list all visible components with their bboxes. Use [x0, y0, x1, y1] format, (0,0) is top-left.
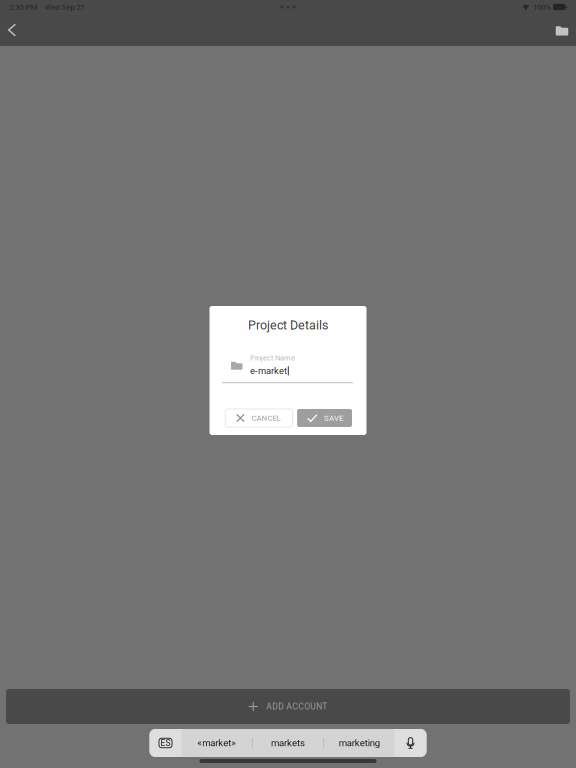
button[interactable]: «market»: [181, 729, 252, 757]
staticText: markets: [271, 737, 305, 749]
staticText: SAVE: [324, 413, 343, 423]
staticText: Project Details: [248, 318, 328, 332]
staticText: CANCEL: [252, 413, 281, 423]
staticText: e-market: [250, 365, 287, 376]
staticText: 2:35 PM: [9, 2, 37, 12]
button[interactable]: Folders: [548, 14, 576, 46]
staticText: Project Name: [250, 353, 295, 362]
button[interactable]: Dictate: [394, 729, 426, 757]
staticText: Wed Sep 21: [44, 2, 84, 12]
button[interactable]: markets: [253, 729, 323, 757]
staticText: marketing: [339, 737, 380, 749]
staticText: «market»: [197, 737, 236, 749]
button[interactable]: CANCEL: [225, 409, 293, 427]
button[interactable]: SAVE: [297, 409, 352, 427]
button[interactable]: Back: [0, 14, 26, 46]
button[interactable]: ADD ACCOUNT: [6, 689, 570, 724]
staticText: ADD ACCOUNT: [266, 701, 327, 711]
button[interactable]: marketing: [324, 729, 394, 757]
staticText: 100%: [533, 2, 551, 12]
staticText: ES: [160, 738, 170, 748]
button[interactable]: Language: [149, 729, 181, 757]
